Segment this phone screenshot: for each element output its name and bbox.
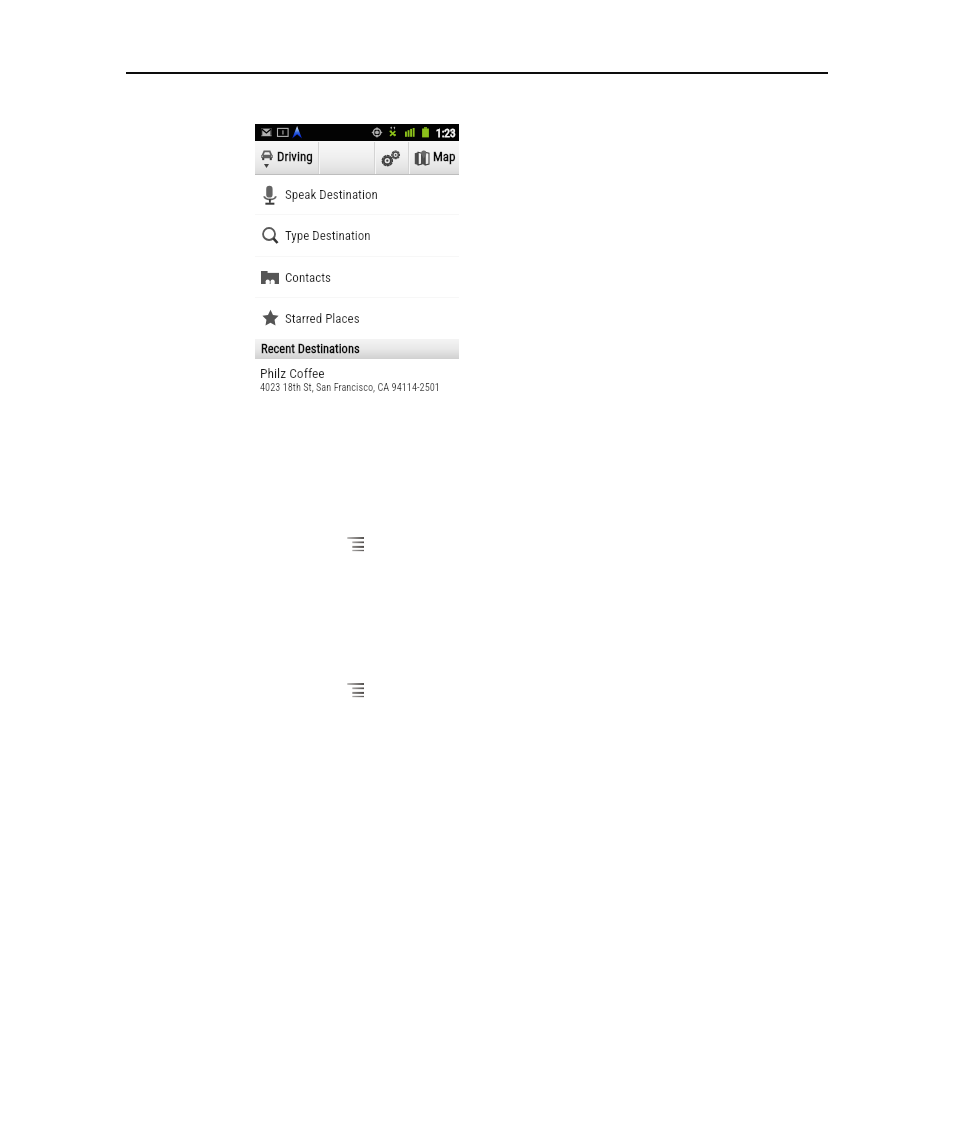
staticText: 4023 18th St, San Francisco, CA 94114-25… [260, 381, 440, 393]
staticText: Contacts [285, 270, 332, 285]
staticText: Type Destination [285, 228, 371, 243]
staticText: Recent Destinations [261, 341, 360, 356]
button[interactable]: Contacts [255, 257, 459, 297]
staticText: Starred Places [285, 311, 360, 326]
button[interactable]: Map [408, 141, 459, 175]
button[interactable]: Driving [255, 141, 318, 175]
staticText: 1:23 [436, 126, 456, 139]
staticText: Map [433, 149, 456, 164]
button[interactable]: Philz Coffee [255, 359, 459, 401]
button[interactable]: Starred Places [255, 298, 459, 339]
button[interactable]: Navigation settings [374, 141, 409, 175]
staticText: Driving [277, 149, 313, 164]
staticText: Philz Coffee [260, 365, 325, 381]
button[interactable]: Speak Destination [255, 175, 459, 214]
button[interactable]: Type Destination [255, 215, 459, 256]
staticText: Speak Destination [285, 187, 378, 202]
